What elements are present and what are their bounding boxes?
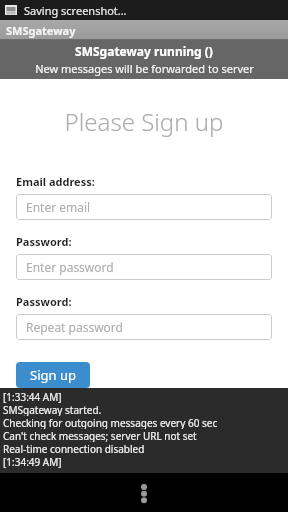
staticText: Can't check messages; server URL not set — [3, 429, 197, 442]
button[interactable]: Enter email — [16, 194, 272, 220]
staticText: [1:34:49 AM] — [3, 455, 62, 468]
staticText: New messages will be forwarded to server — [35, 61, 254, 76]
staticText: Password: — [16, 294, 72, 309]
staticText: SMSgateway running () — [75, 43, 213, 59]
staticText: Sign up — [30, 366, 76, 384]
staticText: Enter password — [26, 259, 114, 275]
staticText: Password: — [16, 234, 72, 249]
staticText: Repeat password — [26, 319, 123, 335]
staticText: [1:33:44 AM] — [3, 390, 62, 403]
button[interactable]: Sign up — [16, 362, 90, 388]
staticText: Enter email — [26, 199, 91, 215]
staticText: Saving screenshot… — [24, 3, 127, 18]
staticText: Real-time connection disabled — [3, 442, 145, 455]
staticText: Checking for outgoing messages every 60 … — [3, 416, 218, 429]
staticText: Please Sign up — [0, 105, 288, 138]
staticText: SMSgateway — [6, 23, 76, 38]
button[interactable]: More options — [124, 473, 164, 512]
staticText: Email address: — [16, 174, 95, 189]
staticText: SMSgateway started. — [3, 403, 102, 416]
button[interactable]: Repeat password — [16, 314, 272, 340]
button[interactable]: Enter password — [16, 254, 272, 280]
